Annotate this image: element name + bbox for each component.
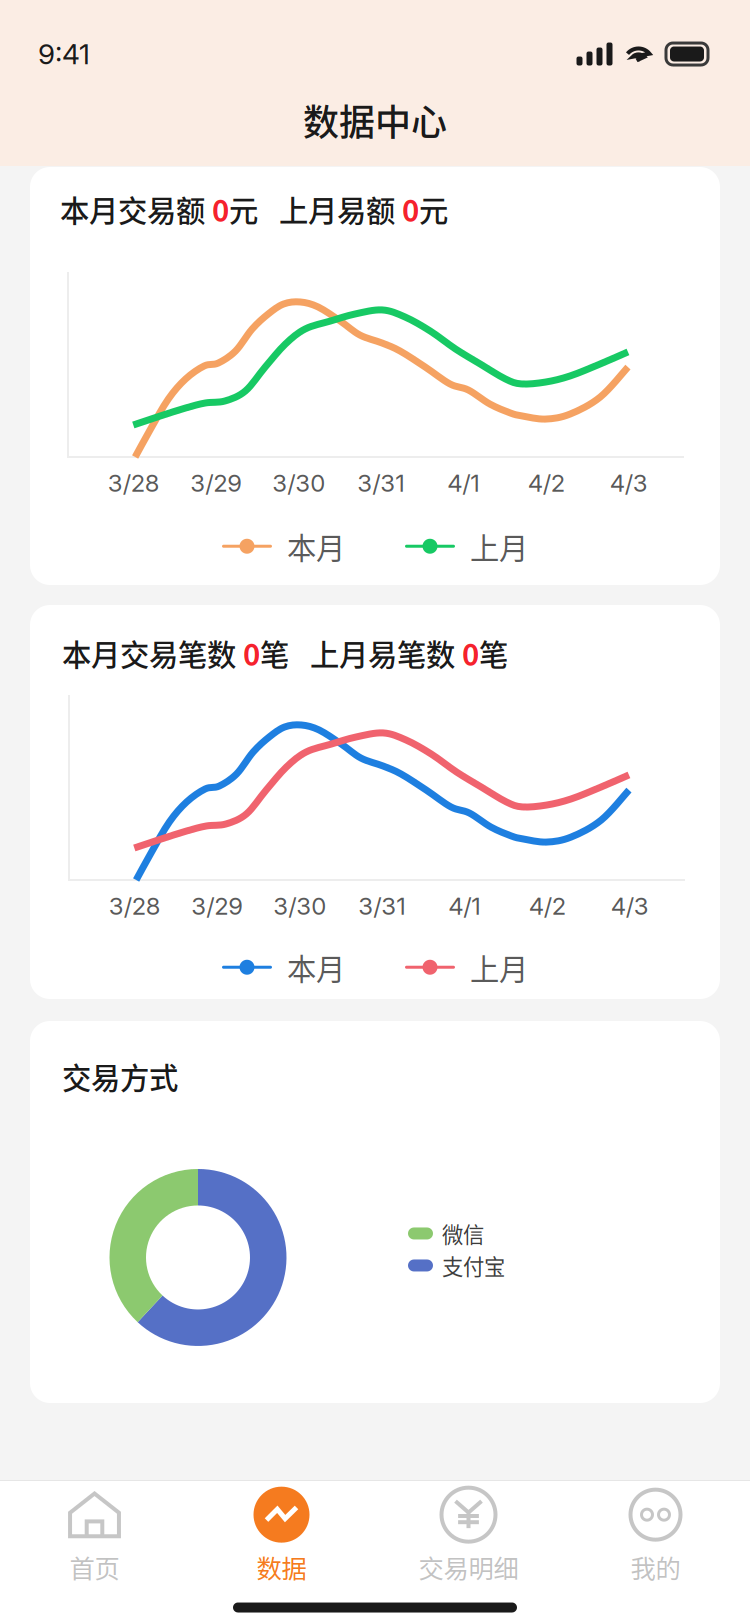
- staticText: 首页: [69, 1549, 119, 1585]
- staticText: 3/30: [273, 891, 326, 920]
- staticText: 0: [236, 632, 260, 674]
- button[interactable]: 数据: [188, 1481, 375, 1591]
- button[interactable]: 首页: [1, 1481, 188, 1591]
- staticText: 0: [205, 188, 229, 230]
- staticText: 笔: [260, 632, 289, 674]
- staticText: 3/29: [190, 468, 242, 497]
- staticText: 元: [419, 188, 448, 230]
- staticText: 数据中心: [303, 94, 447, 146]
- button[interactable]: 交易明细: [375, 1481, 562, 1591]
- staticText: 本月交易笔数: [62, 632, 236, 674]
- staticText: 微信: [442, 1218, 484, 1249]
- staticText: 4/3: [611, 891, 649, 920]
- staticText: 本月: [287, 946, 345, 988]
- staticText: 上月易额: [279, 188, 395, 230]
- staticText: 4/1: [447, 468, 480, 497]
- staticText: 4/2: [529, 891, 566, 920]
- staticText: 3/31: [358, 891, 406, 920]
- staticText: 交易方式: [62, 1055, 178, 1097]
- button[interactable]: 我的: [562, 1481, 749, 1591]
- staticText: 元: [229, 188, 258, 230]
- staticText: 9:41: [38, 37, 90, 71]
- staticText: 4/2: [528, 468, 565, 497]
- staticText: 0: [395, 188, 419, 230]
- staticText: 上月: [470, 525, 528, 567]
- staticText: 0: [455, 632, 479, 674]
- staticText: 3/31: [357, 468, 405, 497]
- staticText: 支付宝: [442, 1250, 505, 1281]
- staticText: 3/29: [191, 891, 243, 920]
- staticText: 4/1: [448, 891, 481, 920]
- staticText: 本月交易额: [60, 188, 205, 230]
- staticText: 数据: [256, 1549, 306, 1585]
- staticText: 3/28: [108, 468, 160, 497]
- staticText: 上月易笔数: [310, 632, 455, 674]
- staticText: 笔: [479, 632, 508, 674]
- staticText: 我的: [630, 1549, 680, 1585]
- staticText: 交易明细: [418, 1549, 518, 1585]
- staticText: 本月: [287, 525, 345, 567]
- staticText: 3/28: [109, 891, 161, 920]
- staticText: 4/3: [610, 468, 648, 497]
- staticText: 3/30: [272, 468, 325, 497]
- staticText: 上月: [470, 946, 528, 988]
